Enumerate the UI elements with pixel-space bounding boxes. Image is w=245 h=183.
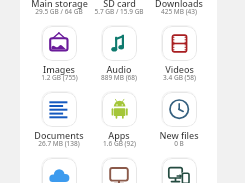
button[interactable]: PC [89,157,149,183]
button[interactable]: Documents [29,91,89,157]
staticText: 0 B [174,139,184,148]
button[interactable]: Cloud [29,157,89,183]
staticText: 3.4 GB (58) [163,73,196,82]
staticText: Apps [108,129,130,141]
staticText: SD card [103,0,136,9]
button[interactable]: Apps [89,91,149,157]
staticText: Downloads [155,0,203,9]
staticText: 29.5 GB / 64 GB [35,7,83,16]
staticText: Main storage [31,0,88,9]
button[interactable]: New files [149,91,209,157]
staticText: Images [43,63,75,75]
staticText: 26.7 MB (138) [38,139,80,148]
staticText: 1.6 GB (92) [103,139,136,148]
button[interactable]: Downloads [149,0,209,25]
staticText: Documents [34,129,84,141]
staticText: Audio [106,63,132,75]
staticText: 1.2 GB (755) [41,73,78,82]
button[interactable]: Images [29,25,89,91]
staticText: 425 MB (43) [161,7,197,16]
staticText: 5.7 GB / 15.9 GB [94,7,144,16]
button[interactable]: Videos [149,25,209,91]
staticText: Videos [165,63,194,75]
button[interactable]: Network [149,157,209,183]
button[interactable]: Main storage [29,0,89,25]
staticText: New files [159,129,199,141]
staticText: 889 MB (68) [101,73,137,82]
button[interactable]: SD card [89,0,149,25]
button[interactable]: Audio [89,25,149,91]
